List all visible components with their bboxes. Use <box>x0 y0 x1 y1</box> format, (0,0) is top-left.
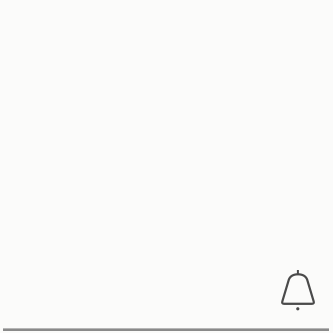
button[interactable]: Notifications <box>281 270 315 310</box>
